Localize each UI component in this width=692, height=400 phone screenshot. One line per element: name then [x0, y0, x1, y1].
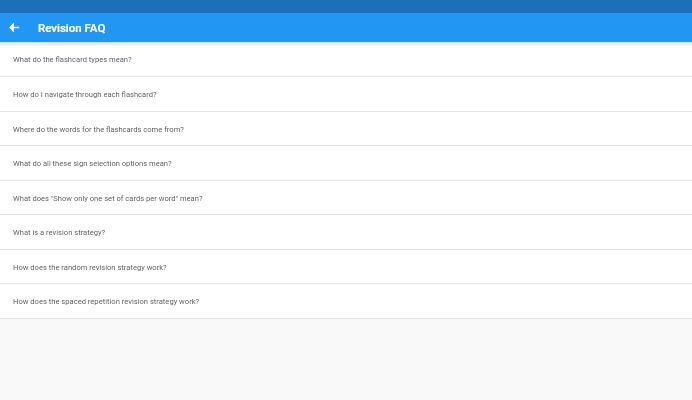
staticText: What does "Show only one set of cards pe…: [13, 194, 203, 203]
staticText: How does the spaced repetition revision …: [13, 297, 200, 306]
staticText: Revision FAQ: [38, 21, 106, 34]
button[interactable]: What is a revision strategy?: [0, 215, 692, 250]
button[interactable]: What do all these sign selection options…: [0, 146, 692, 181]
button[interactable]: What does "Show only one set of cards pe…: [0, 181, 692, 215]
button[interactable]: Where do the words for the flashcards co…: [0, 112, 692, 146]
button[interactable]: What do the flashcard types mean?: [0, 42, 692, 77]
staticText: What is a revision strategy?: [13, 228, 106, 237]
staticText: How do I navigate through each flashcard…: [13, 90, 157, 99]
button[interactable]: Navigate up: [2, 15, 27, 40]
button[interactable]: How does the random revision strategy wo…: [0, 250, 692, 284]
button[interactable]: How does the spaced repetition revision …: [0, 284, 692, 319]
staticText: How does the random revision strategy wo…: [13, 263, 167, 272]
staticText: What do all these sign selection options…: [13, 159, 172, 168]
staticText: Where do the words for the flashcards co…: [13, 125, 184, 134]
staticText: What do the flashcard types mean?: [13, 55, 132, 64]
button[interactable]: How do I navigate through each flashcard…: [0, 77, 692, 112]
